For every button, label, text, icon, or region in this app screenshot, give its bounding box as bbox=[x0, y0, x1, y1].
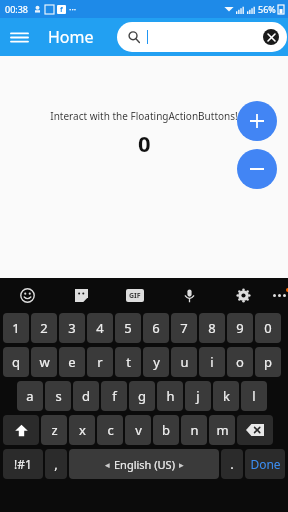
staticText: e bbox=[68, 353, 76, 371]
staticText: j bbox=[196, 387, 200, 405]
staticText: English (US) bbox=[114, 457, 175, 472]
button[interactable]: m bbox=[209, 415, 235, 445]
staticText: 6 bbox=[152, 319, 160, 337]
staticText: m bbox=[216, 421, 229, 439]
button[interactable]: o bbox=[227, 347, 253, 377]
button[interactable]: n bbox=[181, 415, 207, 445]
button[interactable]: . bbox=[221, 449, 243, 479]
staticText: 00:38 bbox=[5, 3, 29, 15]
staticText: z bbox=[51, 421, 58, 439]
button[interactable]: Emoji bbox=[0, 278, 54, 312]
staticText: a bbox=[26, 387, 34, 405]
staticText: l bbox=[252, 387, 256, 405]
button[interactable]: More options bbox=[270, 278, 288, 312]
button[interactable]: Stickers bbox=[54, 278, 108, 312]
button[interactable]: p bbox=[255, 347, 281, 377]
button[interactable]: z bbox=[41, 415, 67, 445]
button[interactable]: u bbox=[171, 347, 197, 377]
staticText: t bbox=[126, 353, 131, 371]
button[interactable]: r bbox=[87, 347, 113, 377]
staticText: ··· bbox=[69, 3, 77, 15]
button[interactable]: s bbox=[45, 381, 71, 411]
staticText: h bbox=[166, 387, 175, 405]
staticText: u bbox=[180, 353, 189, 371]
staticText: 9 bbox=[236, 319, 244, 337]
staticText: 1 bbox=[12, 319, 20, 337]
button[interactable]: ◂ bbox=[69, 449, 219, 479]
button[interactable] bbox=[237, 415, 273, 445]
button[interactable]: g bbox=[129, 381, 155, 411]
button[interactable]: 1 bbox=[3, 313, 29, 343]
staticText: g bbox=[138, 387, 146, 405]
button[interactable]: Decrement bbox=[237, 149, 277, 189]
button[interactable]: 2 bbox=[31, 313, 57, 343]
staticText: s bbox=[55, 387, 62, 405]
button[interactable]: , bbox=[45, 449, 67, 479]
staticText: Done bbox=[250, 456, 281, 472]
button[interactable]: l bbox=[241, 381, 267, 411]
staticText: f bbox=[112, 387, 117, 405]
staticText: x bbox=[79, 421, 86, 439]
button[interactable]: 8 bbox=[199, 313, 225, 343]
button[interactable]: d bbox=[73, 381, 99, 411]
staticText: 8 bbox=[208, 319, 216, 337]
button[interactable]: f bbox=[101, 381, 127, 411]
button[interactable]: 3 bbox=[59, 313, 85, 343]
button[interactable]: h bbox=[157, 381, 183, 411]
staticText: 56% bbox=[258, 3, 276, 15]
staticText: v bbox=[135, 421, 142, 439]
button[interactable]: 6 bbox=[143, 313, 169, 343]
staticText: k bbox=[223, 387, 230, 405]
staticText: 2 bbox=[40, 319, 48, 337]
button[interactable]: y bbox=[143, 347, 169, 377]
button[interactable]: t bbox=[115, 347, 141, 377]
staticText: GIF bbox=[129, 291, 141, 301]
staticText: 5 bbox=[124, 319, 132, 337]
button[interactable]: i bbox=[199, 347, 225, 377]
button[interactable]: x bbox=[69, 415, 95, 445]
button[interactable]: Clear search bbox=[263, 29, 279, 45]
button[interactable]: b bbox=[153, 415, 179, 445]
staticText: Interact with the FloatingActionButtons! bbox=[50, 109, 238, 123]
staticText: p bbox=[264, 353, 272, 371]
staticText: o bbox=[236, 353, 244, 371]
button[interactable]: Open navigation menu bbox=[0, 18, 38, 56]
button[interactable]: w bbox=[31, 347, 57, 377]
button[interactable]: a bbox=[17, 381, 43, 411]
button[interactable]: v bbox=[125, 415, 151, 445]
button[interactable]: q bbox=[3, 347, 29, 377]
staticText: f bbox=[60, 5, 63, 14]
staticText: c bbox=[107, 421, 114, 439]
button[interactable]: Done bbox=[245, 449, 285, 479]
button[interactable]: Increment bbox=[237, 101, 277, 141]
button[interactable]: k bbox=[213, 381, 239, 411]
staticText: q bbox=[12, 353, 20, 371]
button[interactable] bbox=[3, 415, 39, 445]
staticText: w bbox=[39, 353, 50, 371]
staticText: !#1 bbox=[14, 456, 32, 472]
staticText: 0 bbox=[264, 319, 272, 337]
button[interactable]: Voice input bbox=[162, 278, 216, 312]
staticText: 4 bbox=[96, 319, 104, 337]
staticText: r bbox=[97, 353, 103, 371]
staticText: ◂ bbox=[105, 460, 110, 470]
staticText: Home bbox=[48, 26, 94, 48]
staticText: ▸ bbox=[179, 460, 184, 470]
button[interactable]: c bbox=[97, 415, 123, 445]
button[interactable]: 5 bbox=[115, 313, 141, 343]
button[interactable]: Keyboard settings bbox=[216, 278, 270, 312]
staticText: y bbox=[153, 353, 160, 371]
button[interactable]: 0 bbox=[255, 313, 281, 343]
button[interactable]: 4 bbox=[87, 313, 113, 343]
button[interactable]: e bbox=[59, 347, 85, 377]
button[interactable]: 9 bbox=[227, 313, 253, 343]
button[interactable]: Clear search bbox=[117, 22, 287, 52]
staticText: 0 bbox=[138, 128, 151, 158]
button[interactable]: !#1 bbox=[3, 449, 43, 479]
staticText: d bbox=[82, 387, 90, 405]
staticText: 3 bbox=[68, 319, 76, 337]
staticText: . bbox=[230, 455, 234, 473]
button[interactable]: j bbox=[185, 381, 211, 411]
button[interactable]: GIF bbox=[108, 278, 162, 312]
button[interactable]: 7 bbox=[171, 313, 197, 343]
